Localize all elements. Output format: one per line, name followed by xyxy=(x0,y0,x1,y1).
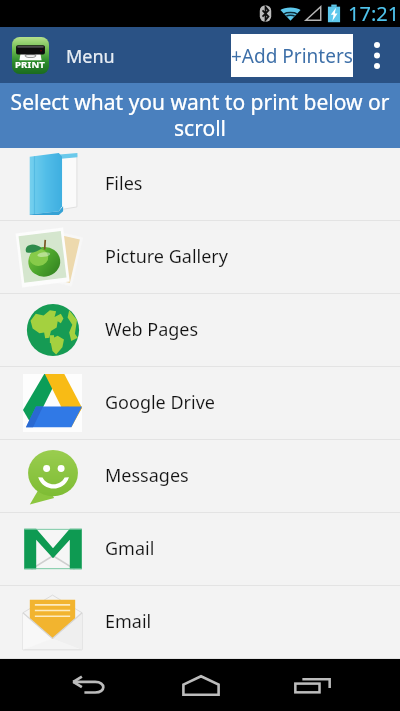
button[interactable]: Picture Gallery xyxy=(0,221,400,293)
staticText: Gmail xyxy=(105,536,155,561)
staticText: Messages xyxy=(105,463,189,488)
button[interactable]: Recent apps xyxy=(225,659,400,711)
button[interactable]: Messages xyxy=(0,440,400,512)
staticText: Picture Gallery xyxy=(105,244,228,269)
button[interactable]: Gmail xyxy=(0,513,400,585)
button[interactable]: Google Drive xyxy=(0,367,400,439)
button[interactable]: Print app xyxy=(12,37,49,74)
button[interactable]: Home xyxy=(176,659,225,711)
staticText: +Add Printers xyxy=(231,43,353,69)
staticText: Google Drive xyxy=(105,390,215,415)
button[interactable]: More options xyxy=(353,27,400,83)
staticText: Web Pages xyxy=(105,317,199,342)
button[interactable]: +Add Printers xyxy=(231,34,353,77)
staticText: Menu xyxy=(66,44,115,69)
button[interactable]: Web Pages xyxy=(0,294,400,366)
button[interactable]: Email xyxy=(0,586,400,658)
staticText: Select what you want to print below or s… xyxy=(3,88,397,143)
staticText: Files xyxy=(105,171,143,196)
button[interactable]: Files xyxy=(0,148,400,220)
staticText: 17:21 xyxy=(348,0,400,27)
button[interactable]: Back xyxy=(0,659,176,711)
staticText: PRINT xyxy=(15,58,46,71)
staticText: Email xyxy=(105,609,152,634)
